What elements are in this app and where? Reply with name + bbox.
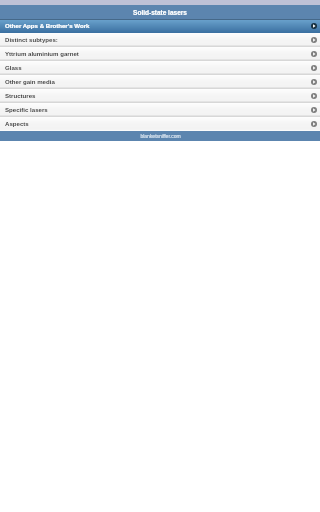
button[interactable]: Specific lasers	[0, 103, 320, 117]
staticText: Distinct subtypes:	[5, 36, 58, 43]
staticText: Other gain media	[5, 78, 55, 85]
button[interactable]: Other Apps & Brother's Work	[0, 19, 320, 33]
button[interactable]: Aspects	[0, 117, 320, 131]
staticText: Aspects	[5, 120, 29, 127]
button[interactable]: Structures	[0, 89, 320, 103]
staticText: Other Apps & Brother's Work	[5, 22, 90, 29]
staticText: Yttrium aluminium garnet	[5, 50, 79, 57]
staticText: Specific lasers	[5, 106, 48, 113]
staticText: Structures	[5, 92, 36, 99]
staticText: blanketsniffer.com	[140, 133, 181, 139]
staticText: Glass	[5, 64, 22, 71]
button[interactable]: Other gain media	[0, 75, 320, 89]
button[interactable]: Glass	[0, 61, 320, 75]
button[interactable]: Distinct subtypes:	[0, 33, 320, 47]
staticText: Solid-state lasers	[133, 9, 187, 16]
button[interactable]: Yttrium aluminium garnet	[0, 47, 320, 61]
